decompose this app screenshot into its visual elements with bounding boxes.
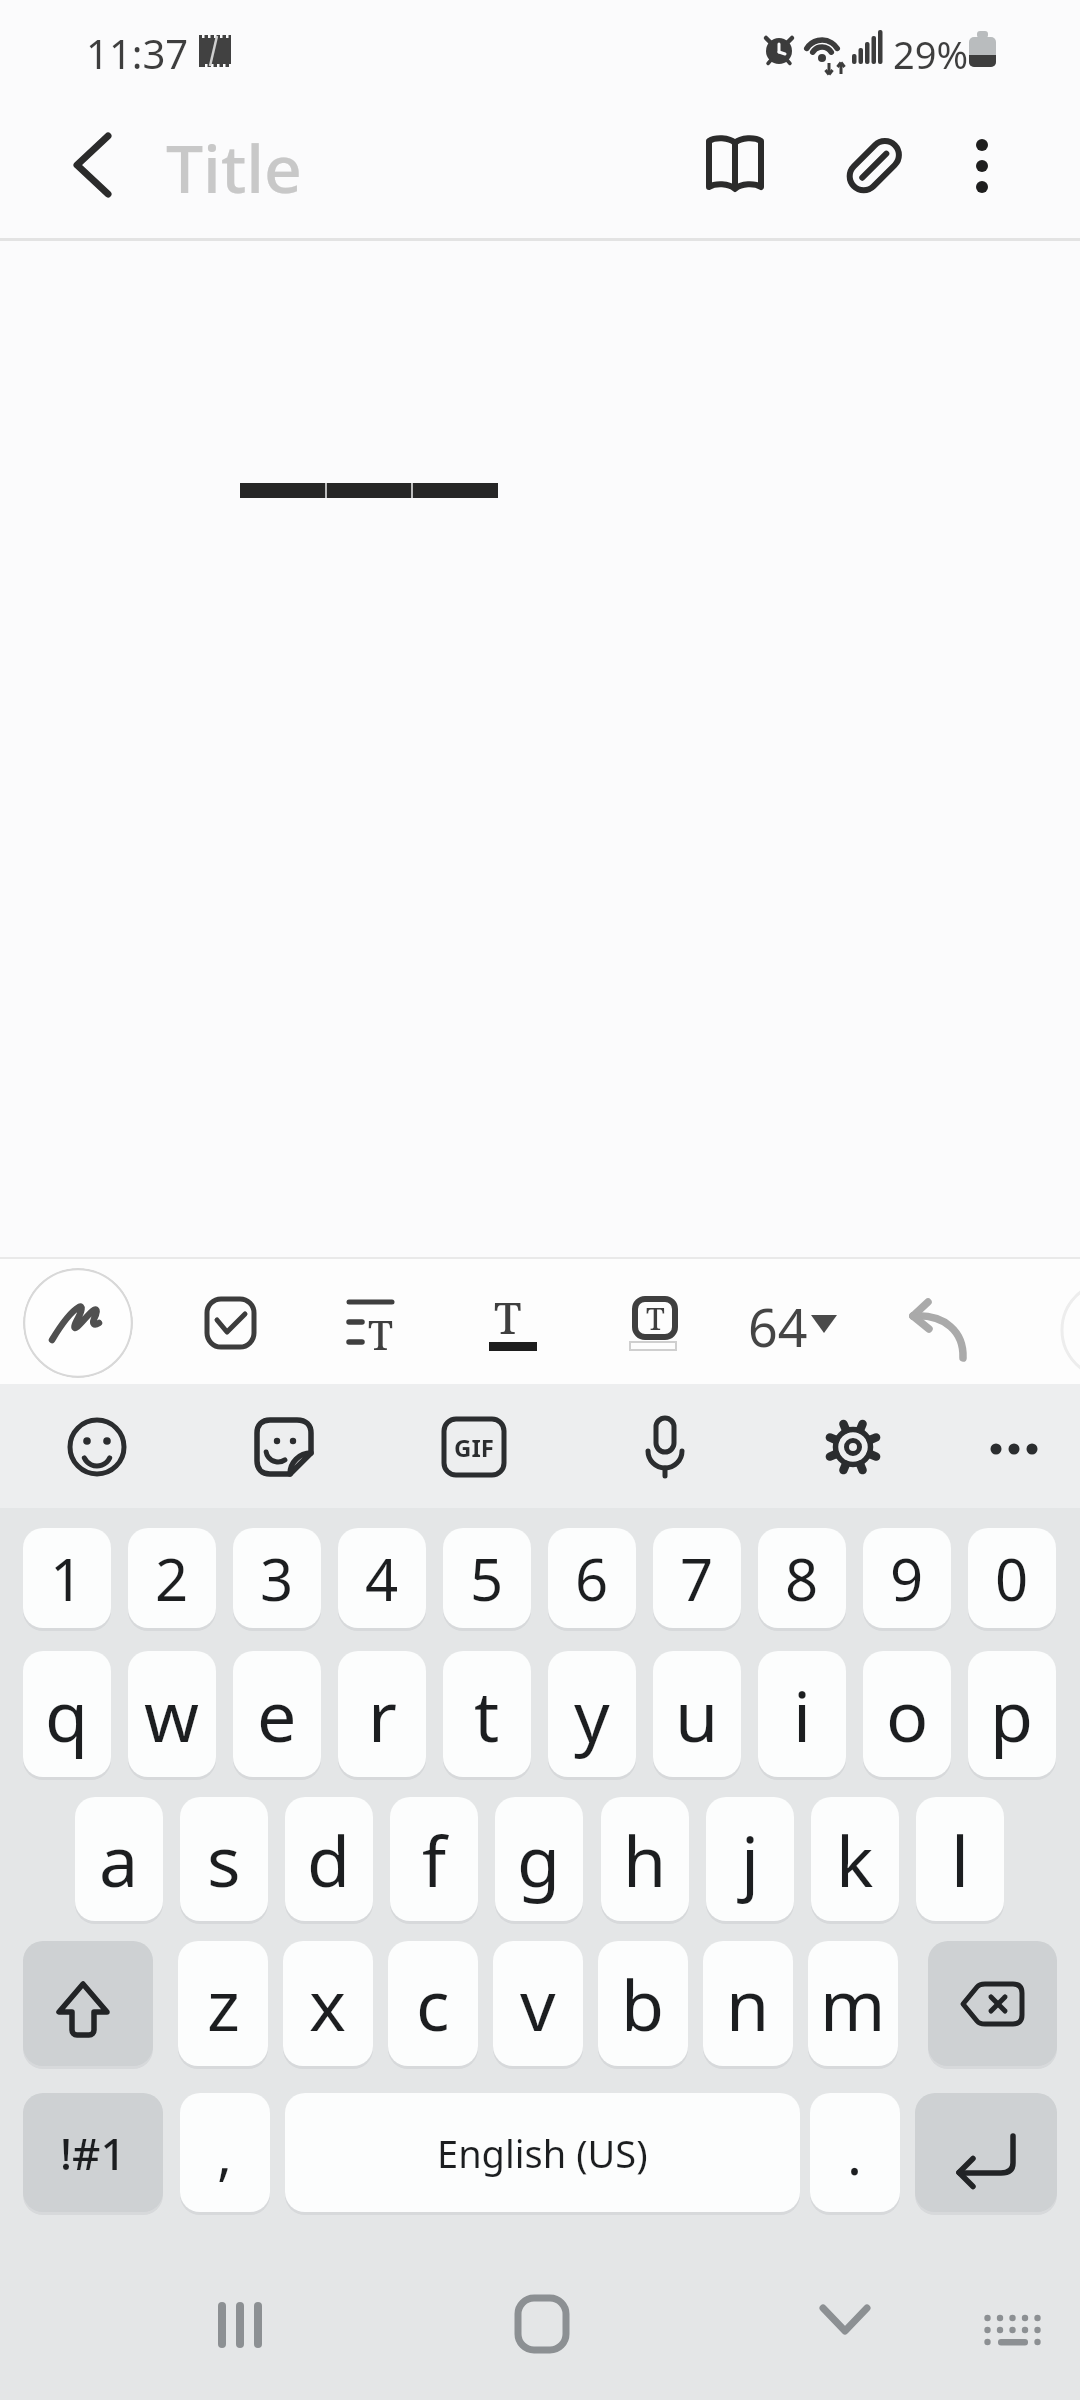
button[interactable]: l [916,1797,1004,1921]
button[interactable]: u [653,1651,741,1777]
staticText: w [144,1667,200,1762]
staticText: q [45,1667,89,1762]
button[interactable]: , [180,2093,270,2212]
button[interactable]: z [178,1941,268,2066]
button[interactable]: 1 [23,1528,111,1628]
staticText: 11:37 [86,26,189,80]
button[interactable]: m [808,1941,898,2066]
staticText: 0 [995,1539,1029,1618]
button[interactable]: h [601,1797,689,1921]
staticText: !#1 [60,2123,126,2183]
staticText: z [207,1956,240,2051]
staticText: t [474,1667,500,1762]
button[interactable]: q [23,1651,111,1777]
button[interactable]: 64 [740,1285,845,1357]
button[interactable]: k [811,1797,899,1921]
button[interactable]: 0 [968,1528,1056,1628]
button[interactable]: y [548,1651,636,1777]
button[interactable]: T [620,1285,690,1355]
staticText: f [422,1812,447,1907]
button[interactable]: a [75,1797,163,1921]
staticText: h [623,1812,667,1907]
staticText: s [207,1812,241,1907]
button[interactable] [195,1285,267,1357]
button[interactable]: T [335,1285,410,1360]
button[interactable]: x [283,1941,373,2066]
staticText: d [307,1812,351,1907]
staticText: b [621,1956,665,2051]
button[interactable] [249,1412,319,1482]
button[interactable] [928,1941,1057,2066]
button[interactable] [62,1412,132,1482]
button[interactable]: g [495,1797,583,1921]
button[interactable]: j [706,1797,794,1921]
button[interactable]: 9 [863,1528,951,1628]
button[interactable]: 2 [128,1528,216,1628]
button[interactable]: o [863,1651,951,1777]
staticText: 64 [748,1291,808,1362]
staticText: x [309,1956,347,2051]
button[interactable]: b [598,1941,688,2066]
staticText: 29% [893,28,969,80]
staticText: o [886,1667,929,1762]
button[interactable] [835,125,915,205]
button[interactable]: e [233,1651,321,1777]
button[interactable] [890,1285,980,1375]
button[interactable]: 4 [338,1528,426,1628]
button[interactable]: 7 [653,1528,741,1628]
staticText: e [257,1667,297,1762]
button[interactable]: 8 [758,1528,846,1628]
staticText: GIF [454,1431,494,1464]
staticText: u [675,1667,719,1762]
button[interactable] [23,1941,153,2066]
button[interactable]: GIF [440,1415,508,1479]
staticText: 2 [155,1539,189,1618]
button[interactable]: c [388,1941,478,2066]
staticText: r [368,1667,397,1762]
button[interactable] [980,1412,1050,1482]
button[interactable]: English (US) [285,2093,800,2212]
staticText: a [99,1812,139,1907]
button[interactable]: !#1 [23,2093,163,2212]
staticText: n [726,1956,770,2051]
button[interactable]: n [703,1941,793,2066]
staticText: 3 [260,1539,294,1618]
staticText: j [741,1812,760,1907]
button[interactable]: w [128,1651,216,1777]
staticText: 9 [890,1539,924,1618]
staticText: 1 [50,1539,84,1618]
button[interactable]: t [443,1651,531,1777]
staticText: 5 [470,1539,504,1618]
button[interactable] [795,2275,895,2375]
button[interactable] [818,1412,888,1482]
button[interactable]: r [338,1651,426,1777]
button[interactable] [23,1268,133,1378]
button[interactable] [50,120,140,210]
staticText: 7 [680,1539,714,1618]
staticText: T [646,1298,665,1339]
button[interactable]: i [758,1651,846,1777]
staticText: l [951,1812,970,1907]
button[interactable] [915,2093,1057,2212]
staticText: k [836,1812,874,1907]
button[interactable]: s [180,1797,268,1921]
button[interactable]: v [493,1941,583,2066]
button[interactable]: T [480,1285,544,1349]
button[interactable]: p [968,1651,1056,1777]
button[interactable] [190,2275,290,2375]
button[interactable]: 5 [443,1528,531,1628]
button[interactable] [962,2275,1062,2375]
button[interactable]: 6 [548,1528,636,1628]
button[interactable]: . [810,2093,900,2212]
button[interactable]: 3 [233,1528,321,1628]
button[interactable]: d [285,1797,373,1921]
button[interactable]: f [390,1797,478,1921]
button[interactable] [695,125,775,205]
button[interactable] [492,2275,592,2375]
staticText: T [368,1307,393,1361]
staticText: Title [166,122,302,212]
button[interactable] [630,1412,700,1482]
staticText: , [217,2115,233,2191]
staticText: English (US) [437,2127,648,2179]
button[interactable] [955,125,1015,205]
